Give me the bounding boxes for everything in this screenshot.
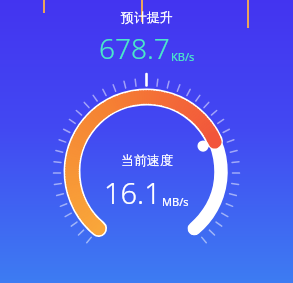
staticText: 678.7	[99, 29, 170, 67]
staticText: 当前速度	[121, 152, 173, 168]
staticText: KB/s	[171, 49, 195, 64]
staticText: MB/s	[162, 194, 189, 209]
staticText: 预计提升	[121, 9, 173, 25]
button[interactable]: Current speed gauge	[0, 0, 293, 283]
staticText: 16.1	[104, 173, 161, 212]
